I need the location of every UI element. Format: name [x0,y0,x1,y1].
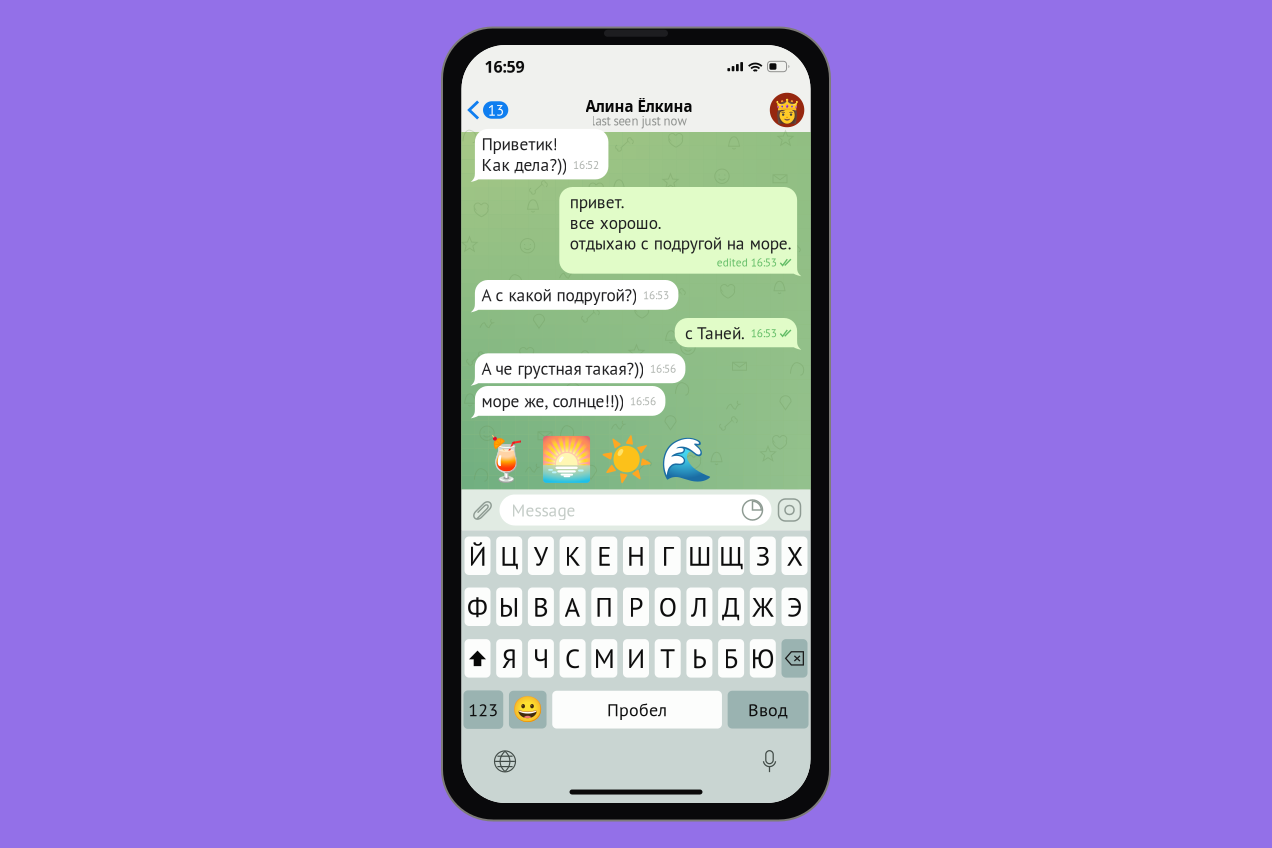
button[interactable]: К [560,536,586,575]
button[interactable]: Е [591,536,617,575]
button[interactable]: Щ [718,536,744,575]
button[interactable]: М [591,639,617,678]
button[interactable]: С [560,639,586,678]
staticText: А че грустная такая?)) [481,358,644,378]
button[interactable]: Camera [771,499,808,521]
button[interactable]: Ш [686,536,712,575]
button[interactable]: Ю [750,639,776,678]
button[interactable]: Ч [528,639,554,678]
staticText: море же, солнце!!)) [481,391,624,411]
staticText: А с какой подругой?) [481,285,637,305]
staticText: Message [511,499,575,521]
staticText: 🍹 [479,435,532,484]
button[interactable]: 123 [463,690,503,729]
staticText: 16:59 [484,56,524,77]
button[interactable]: О [655,587,681,626]
button[interactable]: У [528,536,554,575]
staticText: 16:52 [573,157,599,172]
staticText: М [594,641,615,676]
button[interactable]: А [560,587,586,626]
staticText: 16:56 [650,361,676,376]
staticText: Ц [500,538,518,573]
button[interactable]: Ь [686,639,712,678]
staticText: У [533,538,548,573]
staticText: Г [662,538,674,573]
button[interactable]: И [623,639,649,678]
button[interactable]: Б [718,639,744,678]
staticText: Ввод [748,698,788,721]
button[interactable]: Я [496,639,522,678]
button[interactable]: Й [464,536,490,575]
button[interactable]: Ц [496,536,522,575]
staticText: Щ [719,538,743,573]
button[interactable]: Ы [496,587,522,626]
staticText: В [533,589,549,624]
button[interactable]: Р [623,587,649,626]
staticText: А [565,589,581,624]
button[interactable]: Delete [781,639,807,678]
button[interactable]: Т [655,639,681,678]
button[interactable]: Пробел [552,691,722,729]
button[interactable]: Ввод [728,691,808,729]
staticText: Р [628,589,643,624]
staticText: 👸 [773,98,801,124]
staticText: last seen just now [591,112,686,129]
staticText: привет. все хорошо. отдыхаю с подругой н… [570,192,792,253]
staticText: ☀️ [599,435,652,484]
staticText: Как дела?)) [481,154,567,175]
button[interactable]: Dictation [761,750,777,773]
staticText: З [756,538,770,573]
button[interactable]: Ф [464,587,490,626]
staticText: 16:56 [630,394,656,408]
staticText: 13 [488,100,504,120]
staticText: Е [597,538,611,573]
button[interactable]: Stickers [742,500,771,520]
button[interactable]: Emoji [509,691,546,729]
staticText: Алина Ёлкина [585,96,692,116]
staticText: Я [502,641,517,676]
button[interactable]: З [750,536,776,575]
staticText: Ф [467,589,488,624]
staticText: Б [724,641,739,676]
staticText: Э [787,589,802,624]
staticText: Приветик! [481,133,557,154]
button[interactable]: В [528,587,554,626]
button[interactable]: Н [623,536,649,575]
staticText: И [627,641,645,676]
button[interactable]: Shift [464,639,490,678]
button[interactable]: Г [655,536,681,575]
staticText: Пробел [607,698,667,721]
staticText: 16:53 [751,326,777,340]
button[interactable]: Contact profile [770,93,810,127]
staticText: 123 [468,698,498,721]
button[interactable]: Ж [750,587,776,626]
staticText: 🌊 [659,435,712,484]
staticText: Й [468,538,486,573]
staticText: Х [786,538,802,573]
staticText: П [595,589,613,624]
staticText: К [565,538,581,573]
staticText: Л [691,589,708,624]
staticText: 16:53 [643,288,669,302]
staticText: Ш [688,538,711,573]
staticText: Д [722,589,740,624]
staticText: Ю [751,641,775,676]
staticText: 😀 [512,695,544,724]
button[interactable]: Next keyboard [494,751,515,772]
button[interactable]: Э [781,587,807,626]
staticText: 🌅 [539,435,592,484]
button[interactable]: Х [781,536,807,575]
button[interactable]: 13 [461,88,508,132]
staticText: С [565,641,580,676]
button[interactable]: П [591,587,617,626]
staticText: Н [627,538,645,573]
staticText: Ы [499,589,520,624]
button[interactable]: Л [686,587,712,626]
button[interactable]: Attach [463,498,499,521]
staticText: Ч [533,641,549,676]
staticText: Ж [752,589,773,624]
staticText: Ь [692,641,707,676]
staticText: О [659,589,677,624]
staticText: Т [660,641,675,676]
button[interactable]: Д [718,587,744,626]
